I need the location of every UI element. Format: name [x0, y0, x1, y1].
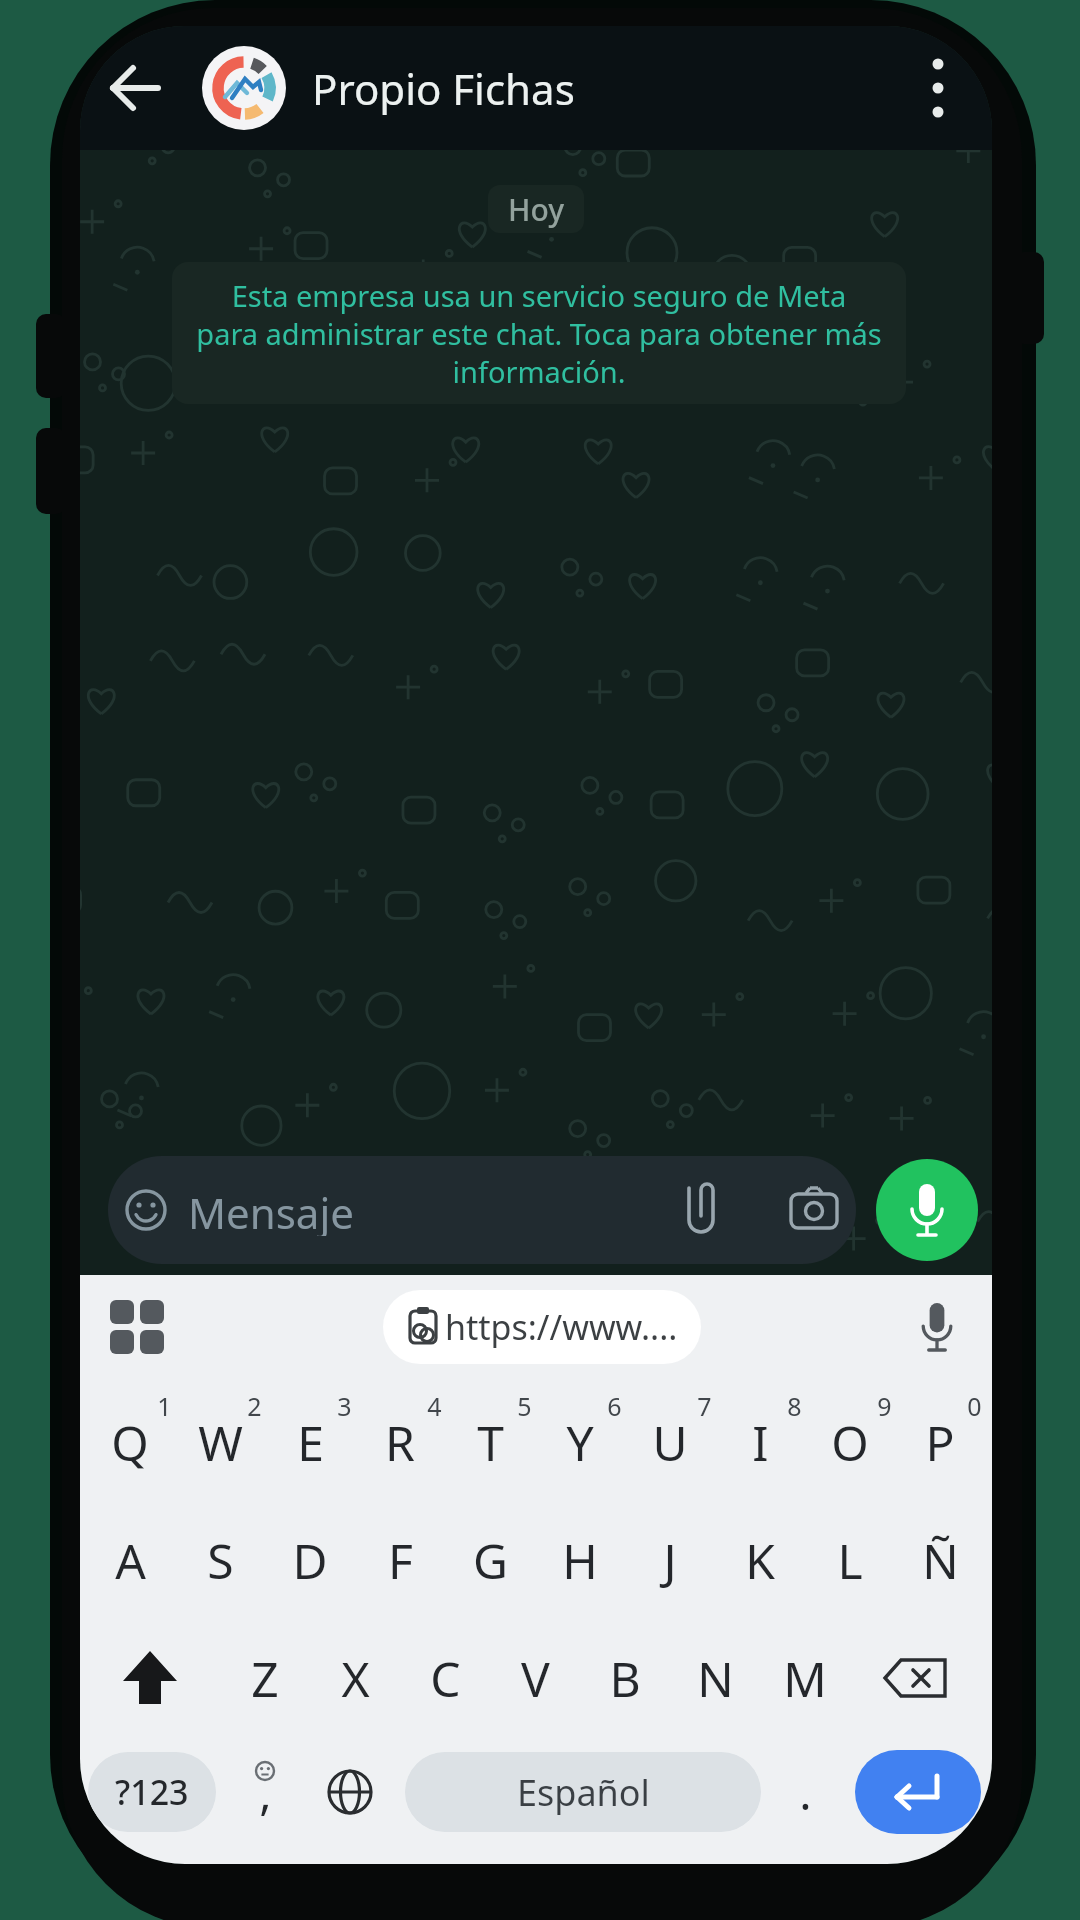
staticText: Z	[251, 1646, 279, 1711]
staticText: V	[521, 1646, 550, 1711]
button[interactable]: D	[270, 1520, 350, 1600]
staticText: D	[292, 1528, 328, 1593]
button[interactable]: P	[900, 1402, 980, 1482]
staticText: C	[430, 1646, 461, 1711]
button[interactable]: M	[765, 1638, 845, 1718]
button[interactable]: G	[450, 1520, 530, 1600]
button[interactable]	[102, 56, 168, 120]
staticText: L	[837, 1528, 863, 1593]
button[interactable]	[106, 1296, 168, 1358]
staticText: 0	[967, 1389, 982, 1423]
button[interactable]	[202, 46, 286, 130]
button[interactable]: W	[180, 1402, 260, 1482]
staticText: K	[745, 1528, 775, 1593]
staticText: https://www....	[445, 1304, 678, 1350]
button[interactable]: Q	[90, 1402, 170, 1482]
button[interactable]: V	[495, 1638, 575, 1718]
staticText: Esta empresa usa un servicio seguro de M…	[196, 276, 882, 391]
button[interactable]: I	[720, 1402, 800, 1482]
staticText: 6	[607, 1389, 622, 1423]
button[interactable]: A	[90, 1520, 170, 1600]
button[interactable]: https://www....	[383, 1290, 701, 1364]
staticText: P	[925, 1410, 955, 1475]
staticText: 4	[427, 1389, 442, 1423]
staticText: .	[799, 1761, 812, 1824]
button[interactable]: O	[810, 1402, 890, 1482]
button[interactable]: L	[810, 1520, 890, 1600]
staticText: N	[697, 1646, 734, 1711]
staticText: Y	[566, 1410, 594, 1475]
button[interactable]: C	[405, 1638, 485, 1718]
button[interactable]	[108, 1156, 856, 1264]
button[interactable]: N	[675, 1638, 755, 1718]
button[interactable]: X	[315, 1638, 395, 1718]
button[interactable]: Z	[225, 1638, 305, 1718]
staticText: 2	[247, 1389, 262, 1423]
staticText: E	[297, 1410, 324, 1475]
staticText: 5	[517, 1389, 532, 1423]
staticText: O	[831, 1410, 869, 1475]
staticText: X	[341, 1646, 370, 1711]
button[interactable]	[906, 1296, 968, 1358]
button[interactable]: Español	[405, 1752, 761, 1832]
button[interactable]: ?123	[88, 1752, 216, 1832]
staticText: Mensaje	[188, 1184, 354, 1236]
button[interactable]	[876, 1159, 978, 1261]
staticText: 9	[877, 1389, 892, 1423]
staticText: G	[473, 1528, 508, 1593]
button[interactable]: Ñ	[900, 1520, 980, 1600]
staticText: T	[477, 1410, 504, 1475]
staticText: U	[652, 1410, 688, 1475]
button[interactable]: U	[630, 1402, 710, 1482]
staticText: 7	[697, 1389, 712, 1423]
button[interactable]	[312, 1754, 388, 1830]
staticText: H	[562, 1528, 598, 1593]
staticText: Hoy	[508, 189, 565, 230]
staticText: S	[207, 1528, 234, 1593]
staticText: 3	[337, 1389, 352, 1423]
button[interactable]: F	[360, 1520, 440, 1600]
button[interactable]: R	[360, 1402, 440, 1482]
staticText: 1	[157, 1389, 172, 1423]
staticText: I	[752, 1410, 769, 1475]
button[interactable]: J	[630, 1520, 710, 1600]
button[interactable]: T	[450, 1402, 530, 1482]
staticText: Ñ	[922, 1528, 959, 1593]
button[interactable]: ,	[230, 1752, 300, 1832]
button[interactable]: Esta empresa usa un servicio seguro de M…	[172, 262, 906, 404]
staticText: W	[198, 1410, 243, 1475]
button[interactable]: K	[720, 1520, 800, 1600]
staticText: Q	[111, 1410, 149, 1475]
button[interactable]: B	[585, 1638, 665, 1718]
staticText: R	[385, 1410, 415, 1475]
button[interactable]: H	[540, 1520, 620, 1600]
button[interactable]: Y	[540, 1402, 620, 1482]
staticText: ?123	[115, 1769, 189, 1815]
staticText: J	[663, 1528, 677, 1593]
button[interactable]	[912, 56, 964, 120]
button[interactable]	[875, 1638, 955, 1718]
staticText: B	[609, 1646, 641, 1711]
staticText: A	[115, 1528, 146, 1593]
button[interactable]: E	[270, 1402, 350, 1482]
staticText: ,	[259, 1761, 272, 1824]
staticText: Español	[517, 1768, 650, 1817]
button[interactable]	[855, 1750, 981, 1834]
staticText: Propio Fichas	[312, 60, 575, 116]
button[interactable]: .	[770, 1752, 840, 1832]
staticText: M	[783, 1646, 827, 1711]
button[interactable]: S	[180, 1520, 260, 1600]
button[interactable]	[110, 1638, 190, 1718]
staticText: F	[388, 1528, 413, 1593]
staticText: 8	[787, 1389, 802, 1423]
